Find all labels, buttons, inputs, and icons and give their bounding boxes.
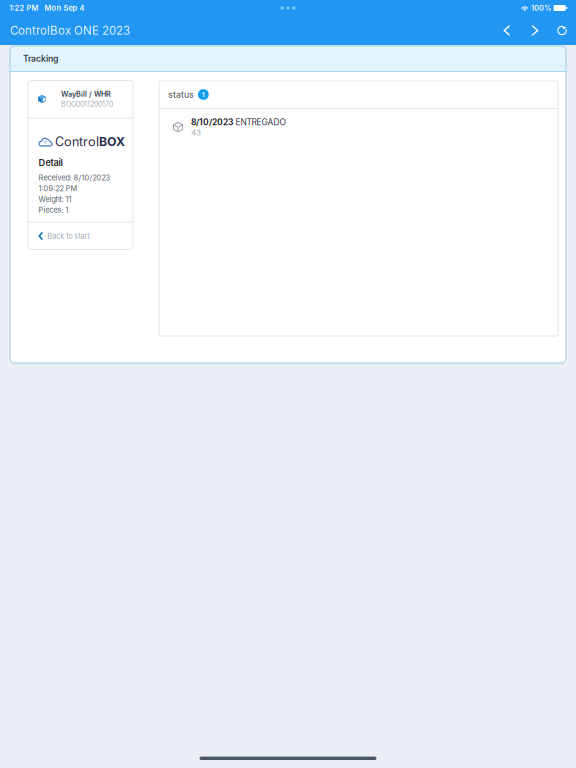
staticText: Back to start xyxy=(47,231,89,240)
staticText: Detail xyxy=(38,157,62,168)
button[interactable]: Reload xyxy=(548,17,576,43)
button[interactable]: Back xyxy=(492,17,522,43)
staticText: Mon Sep 4 xyxy=(44,3,84,12)
button[interactable]: Back to start xyxy=(28,222,133,249)
staticText: 1 xyxy=(202,90,205,99)
staticText: BOX xyxy=(99,134,125,149)
staticText: 1:09:22 PM xyxy=(38,184,77,193)
staticText: Received: 8/10/2023 xyxy=(38,173,110,182)
staticText: ENTREGADO xyxy=(235,117,285,127)
staticText: BOG0011200170 xyxy=(61,100,113,108)
button[interactable]: Forward xyxy=(522,17,548,43)
staticText: status xyxy=(168,89,194,100)
staticText: Pieces: 1 xyxy=(38,206,68,214)
staticText: 1:22 PM xyxy=(9,3,38,12)
staticText: ControlBox ONE 2023 xyxy=(10,24,130,37)
staticText: WayBill / WHR xyxy=(61,90,111,98)
staticText: Control xyxy=(55,134,99,149)
staticText: 43 xyxy=(191,128,201,137)
staticText: 8/10/2023 xyxy=(191,117,233,127)
staticText: Weight: 11 xyxy=(38,195,71,204)
staticText: Tracking xyxy=(23,53,58,64)
staticText: 100% xyxy=(531,3,551,12)
